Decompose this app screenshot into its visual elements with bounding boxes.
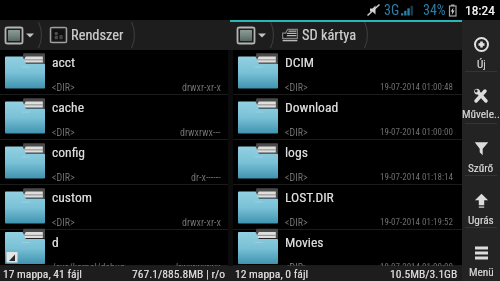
staticText: 3G <box>384 2 400 18</box>
staticText: 19-07-2014 01:18:14 <box>380 172 453 183</box>
staticText: <DIR> <box>52 127 75 139</box>
staticText: <DIR> <box>285 172 308 184</box>
button[interactable]: cache <box>0 95 228 140</box>
staticText: 18:24 <box>465 2 495 18</box>
staticText: cache <box>52 99 85 115</box>
staticText: 34% <box>423 2 446 18</box>
button[interactable]: d <box>0 230 228 266</box>
staticText: Új <box>477 58 486 71</box>
staticText: Ugrás <box>468 214 494 227</box>
staticText: Menü <box>469 266 494 279</box>
staticText: 10.5MB/3.1GB <box>390 267 458 281</box>
button[interactable]: DCIM <box>233 50 462 95</box>
staticText: dr-x------ <box>191 172 221 184</box>
staticText: config <box>52 144 86 160</box>
staticText: <DIR> <box>52 217 75 229</box>
staticText: <DIR> <box>285 217 308 229</box>
staticText: d <box>52 234 59 250</box>
staticText: /sys/kernel/debug <box>52 262 125 274</box>
staticText: Rendszer <box>71 27 124 44</box>
staticText: Szűrő <box>468 162 494 175</box>
staticText: 767.1/885.8MB | r/o <box>132 267 226 281</box>
staticText: <DIR> <box>52 82 75 94</box>
button[interactable]: Rendszer <box>47 20 130 50</box>
staticText: SD kártya <box>302 27 357 44</box>
staticText: DCIM <box>285 54 315 70</box>
staticText: Művele... <box>462 108 500 125</box>
staticText: 19-07-2014 01:00:00 <box>380 262 453 273</box>
staticText: <DIR> <box>285 82 308 94</box>
button[interactable]: Download <box>233 95 462 140</box>
button[interactable]: Choose storage <box>237 20 268 50</box>
button[interactable]: config <box>0 140 228 185</box>
staticText: Download <box>285 99 339 115</box>
staticText: Movies <box>285 234 324 250</box>
staticText: 12 mappa, 0 fájl <box>235 267 309 281</box>
button[interactable]: Szűrő <box>462 124 500 176</box>
button[interactable]: custom <box>0 185 228 230</box>
button[interactable]: acct <box>0 50 228 95</box>
staticText: lrwxrwxrwx <box>176 262 221 274</box>
staticText: <DIR> <box>52 172 75 184</box>
staticText: acct <box>52 54 76 70</box>
staticText: LOST.DIR <box>285 189 334 205</box>
button[interactable]: Új <box>462 20 500 72</box>
button[interactable]: Művele... <box>462 72 500 124</box>
staticText: drwxr-xr-x <box>182 82 221 94</box>
button[interactable]: Menü <box>462 228 500 280</box>
button[interactable]: logs <box>233 140 462 185</box>
staticText: 19-07-2014 01:00:48 <box>380 82 453 93</box>
staticText: 19-07-2014 01:00:00 <box>380 127 453 138</box>
staticText: <DIR> <box>285 127 308 139</box>
staticText: 17 mappa, 41 fájl <box>3 267 82 281</box>
staticText: logs <box>285 144 308 160</box>
button[interactable]: LOST.DIR <box>233 185 462 230</box>
staticText: 19-07-2014 01:19:52 <box>380 217 453 228</box>
staticText: <DIR> <box>285 262 308 274</box>
button[interactable]: SD kártya <box>279 20 363 50</box>
staticText: custom <box>52 189 92 205</box>
button[interactable]: Ugrás <box>462 176 500 228</box>
button[interactable]: Movies <box>233 230 462 266</box>
staticText: drwxr-xr-x <box>182 217 221 229</box>
button[interactable]: Choose storage <box>5 20 36 50</box>
staticText: drwxrwx--- <box>180 127 221 139</box>
